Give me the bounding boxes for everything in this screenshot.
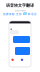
staticText: 语音转文字翻译 [6, 3, 34, 8]
staticText: 实时语音识别 · 多语种互译 [14, 10, 25, 12]
staticText: 免费体验 支持 40 种语言 [3, 12, 37, 16]
